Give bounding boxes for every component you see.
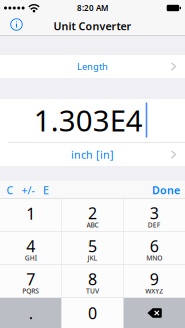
button[interactable]: C (2, 181, 18, 199)
staticText: . (29, 302, 33, 324)
button[interactable]: 6 (124, 232, 185, 264)
staticText: DEF (148, 221, 161, 229)
button[interactable]: 9 (124, 265, 185, 297)
staticText: ABC (86, 221, 98, 229)
staticText: 1 (26, 203, 35, 224)
button[interactable]: 2 (62, 199, 123, 231)
staticText: 4 (26, 235, 35, 257)
staticText: C (6, 183, 13, 197)
staticText: +/- (21, 183, 34, 197)
button[interactable]: +/- (18, 181, 38, 199)
staticText: 6 (150, 235, 159, 257)
staticText: Length (77, 60, 108, 73)
button[interactable]: 0 (62, 298, 123, 328)
staticText: 3 (150, 202, 159, 224)
staticText: 9 (150, 268, 159, 290)
button[interactable]: 7 (0, 265, 61, 297)
staticText: TUV (86, 287, 99, 295)
staticText: 1.303E4 (34, 100, 143, 139)
button[interactable]: Length (0, 55, 185, 78)
staticText: 8 (88, 268, 97, 290)
staticText: 8:20 AM (77, 3, 108, 13)
button[interactable]: . (0, 298, 61, 328)
staticText: 5 (88, 235, 97, 257)
button[interactable]: Info (0, 16, 33, 36)
staticText: E (43, 183, 49, 197)
staticText: 2 (88, 202, 97, 224)
staticText: WXYZ (145, 287, 163, 295)
button[interactable]: Done (150, 181, 182, 199)
staticText: inch [in] (71, 147, 114, 162)
staticText: 0 (88, 302, 97, 324)
staticText: Done (152, 183, 180, 197)
staticText: Unit Converter (53, 19, 131, 33)
button[interactable]: 4 (0, 232, 61, 264)
staticText: MNO (146, 254, 162, 262)
staticText: PQRS (22, 287, 39, 295)
button[interactable]: Delete (124, 298, 185, 328)
staticText: JKL (87, 254, 97, 262)
staticText: GHI (25, 254, 37, 262)
button[interactable]: 1 (0, 199, 61, 231)
button[interactable]: E (38, 181, 54, 199)
button[interactable]: 3 (124, 199, 185, 231)
button[interactable]: inch [in] (0, 143, 185, 166)
staticText: 7 (26, 268, 35, 290)
button[interactable]: 8 (62, 265, 123, 297)
button[interactable]: 5 (62, 232, 123, 264)
